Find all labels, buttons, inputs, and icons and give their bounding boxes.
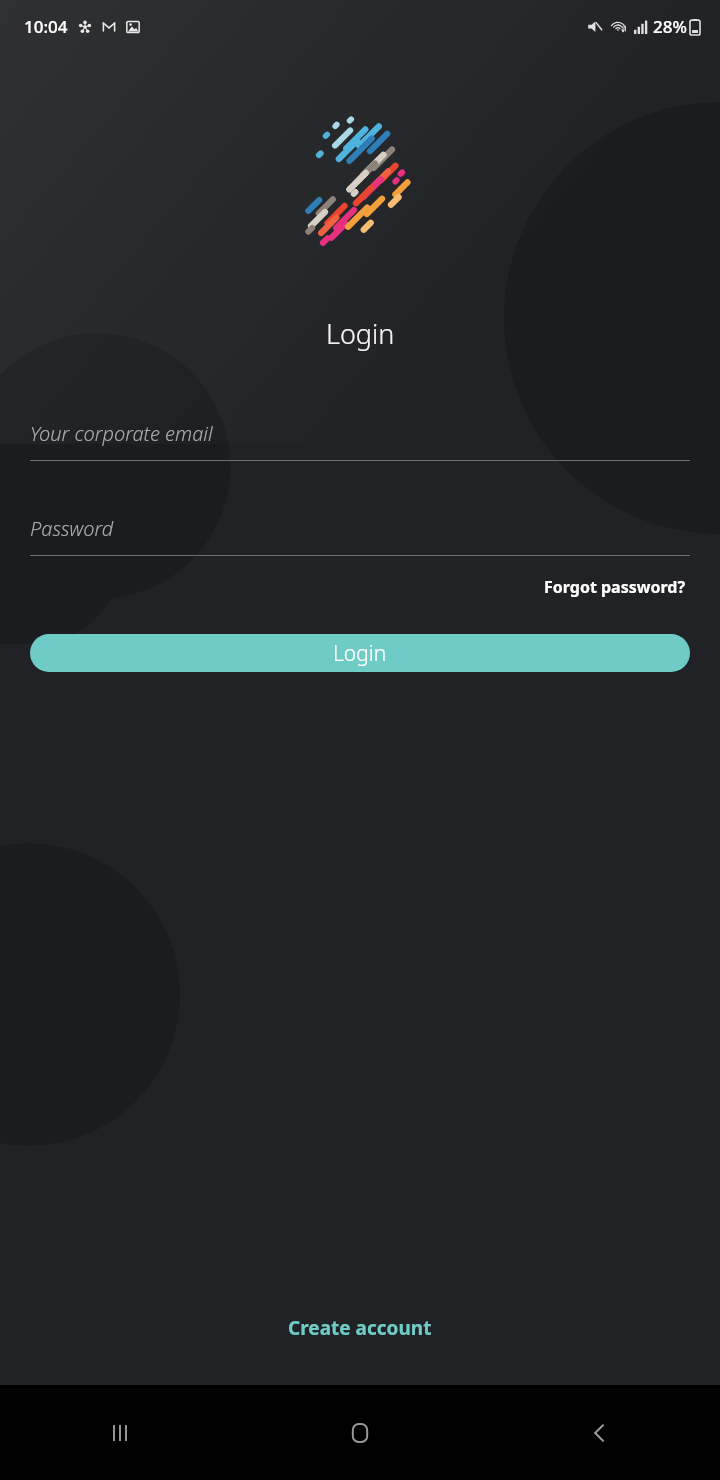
staticText: Create account	[288, 1315, 432, 1341]
button[interactable]: Your corporate email	[30, 416, 690, 450]
button[interactable]: Password	[30, 511, 690, 545]
staticText: Login	[333, 639, 387, 668]
button[interactable]: Home	[240, 1385, 480, 1480]
staticText: Login	[326, 315, 395, 352]
button[interactable]: Login	[30, 634, 690, 672]
button[interactable]: Create account	[280, 1309, 440, 1347]
staticText: 28%	[653, 15, 687, 38]
button[interactable]: Forgot password?	[540, 570, 690, 604]
staticText: Forgot password?	[544, 576, 686, 598]
button[interactable]: Recents	[0, 1385, 240, 1480]
staticText: Password	[30, 515, 114, 542]
staticText: Your corporate email	[30, 420, 213, 447]
button[interactable]: Back	[480, 1385, 720, 1480]
staticText: 10:04	[24, 15, 68, 38]
